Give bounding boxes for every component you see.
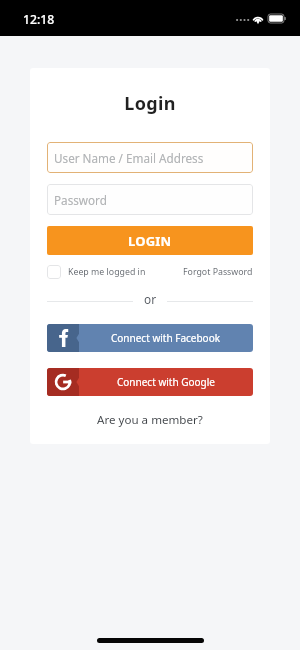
staticText: Connect with Google — [117, 375, 215, 389]
staticText: Are you a member? — [97, 412, 203, 428]
button[interactable]: Forgot Password — [183, 266, 253, 278]
button[interactable]: Keep me logged in — [47, 265, 146, 279]
staticText: User Name / Email Address — [54, 150, 204, 166]
button[interactable]: Are you a member? — [47, 410, 253, 426]
staticText: Login — [47, 91, 253, 116]
staticText: LOGIN — [128, 232, 172, 250]
button[interactable]: Password — [47, 184, 253, 215]
button[interactable]: User Name / Email Address — [47, 142, 253, 173]
staticText: Connect with Facebook — [111, 331, 221, 345]
button[interactable]: LOGIN — [47, 226, 253, 255]
staticText: Forgot Password — [183, 266, 253, 278]
staticText: Keep me logged in — [68, 266, 146, 278]
staticText: 12:18 — [23, 11, 55, 28]
staticText: Password — [54, 192, 107, 208]
staticText: or — [144, 291, 157, 305]
button[interactable]: Connect with Facebook — [47, 324, 253, 352]
button[interactable]: Connect with Google — [47, 368, 253, 396]
